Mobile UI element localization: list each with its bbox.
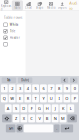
button[interactable]: B [44, 114, 51, 122]
button[interactable] [24, 124, 53, 132]
button[interactable]: 3 [16, 84, 23, 92]
button[interactable]: Return [61, 124, 73, 132]
button[interactable]: P [71, 94, 78, 102]
button[interactable]: O [63, 94, 70, 102]
staticText: 4 [27, 86, 29, 91]
staticText: 3 [19, 86, 21, 91]
staticText: Dubrj [21, 78, 29, 82]
staticText: P [74, 96, 76, 101]
button[interactable]: Y [40, 94, 47, 102]
button[interactable]: Z [13, 114, 19, 122]
staticText: . [56, 126, 57, 131]
button[interactable]: J [52, 104, 58, 112]
staticText: K [62, 106, 64, 111]
staticText: M [61, 116, 65, 121]
button[interactable]: 0 [71, 84, 78, 92]
button[interactable]: S [13, 104, 19, 112]
staticText: Table [14, 6, 21, 9]
staticText: B [46, 116, 49, 121]
button[interactable]: R [24, 94, 31, 102]
button[interactable]: A [5, 104, 12, 112]
button[interactable]: Shape [34, 0, 45, 11]
staticText: L [70, 106, 72, 111]
staticText: 9 [66, 86, 68, 91]
button[interactable]: Next field [70, 77, 77, 83]
button[interactable]: T [32, 94, 39, 102]
button[interactable]: E [16, 94, 23, 102]
button[interactable]: Media [45, 0, 57, 11]
button[interactable]: . [54, 124, 60, 132]
staticText: 2 [11, 86, 13, 91]
button[interactable]: 5 [32, 84, 39, 92]
button[interactable]: D [20, 104, 27, 112]
staticText: X [23, 116, 25, 121]
button[interactable]: 2 [9, 84, 15, 92]
button[interactable]: 4 [24, 84, 31, 92]
button[interactable]: White [0, 21, 25, 28]
button[interactable]: 6 [40, 84, 47, 92]
button[interactable]: Table [12, 0, 23, 11]
staticText: J [55, 106, 56, 111]
staticText: 8 [58, 86, 60, 91]
staticText: White [10, 23, 19, 26]
staticText: Table rows [4, 15, 23, 20]
button[interactable]: Q [1, 94, 8, 102]
button[interactable]: I [56, 94, 62, 102]
staticText: T [35, 96, 37, 101]
button[interactable]: W [9, 94, 15, 102]
button[interactable]: F [28, 104, 35, 112]
staticText: Tab [7, 78, 11, 82]
button[interactable]: 8 [56, 84, 62, 92]
button[interactable]: Title [0, 28, 25, 34]
button[interactable]: Header [0, 34, 25, 41]
button[interactable]: 7 [48, 84, 55, 92]
button[interactable]: N [52, 114, 58, 122]
button[interactable]: Import [57, 0, 68, 11]
button[interactable]: V [36, 114, 43, 122]
button[interactable]: Sym [6, 124, 15, 132]
staticText: D [22, 106, 25, 111]
staticText: C [30, 116, 33, 121]
staticText: I [58, 96, 59, 101]
staticText: F [31, 106, 33, 111]
staticText: E [19, 96, 21, 101]
staticText: U [50, 96, 53, 101]
staticText: R [27, 96, 29, 101]
button[interactable]: X [20, 114, 27, 122]
button[interactable]: U [48, 94, 55, 102]
button[interactable]: Delete [67, 114, 77, 122]
button[interactable]: Tab [2, 77, 16, 83]
staticText: Sym [9, 127, 13, 130]
button[interactable]: H [44, 104, 51, 112]
staticText: O [65, 96, 68, 101]
staticText: 5 [35, 86, 37, 91]
staticText: 0 [74, 86, 76, 91]
staticText: Chart [25, 6, 32, 9]
button[interactable]: K [60, 104, 66, 112]
button[interactable]: Shift [2, 114, 12, 122]
button[interactable]: M [60, 114, 66, 122]
staticText: H [46, 106, 49, 111]
staticText: 1 [3, 86, 5, 91]
button[interactable]: 1 [1, 84, 8, 92]
staticText: W [10, 96, 14, 101]
button[interactable]: Keyboard [1, 0, 12, 11]
staticText: Shape [36, 6, 44, 9]
staticText: Header [10, 36, 20, 39]
button[interactable]: L [67, 104, 74, 112]
staticText: 6 [42, 86, 44, 91]
button[interactable]: Chart [23, 0, 34, 11]
staticText: Q [3, 96, 6, 101]
button[interactable]: Switch keyboard [16, 124, 23, 132]
staticText: G [38, 106, 41, 111]
staticText: Import [58, 6, 67, 9]
button[interactable]: Audio [68, 0, 78, 13]
button[interactable]: G [36, 104, 43, 112]
button[interactable]: Previous field [61, 77, 68, 83]
button[interactable]: 9 [63, 84, 70, 92]
staticText: Media [47, 6, 55, 9]
staticText: N [54, 116, 57, 121]
staticText: Y [42, 96, 44, 101]
button[interactable]: C [28, 114, 35, 122]
button[interactable]: Dubrj [18, 77, 32, 83]
